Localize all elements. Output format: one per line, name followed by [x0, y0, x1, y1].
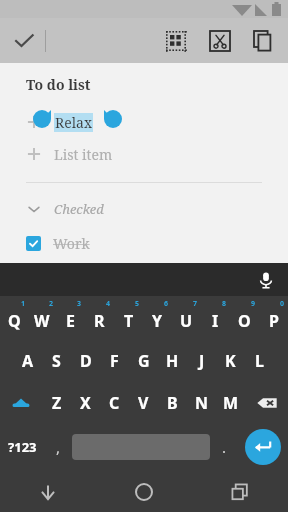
button[interactable]: 4: [85, 296, 114, 340]
staticText: 4: [106, 299, 111, 309]
button[interactable]: ,: [44, 424, 72, 470]
button[interactable]: Done: [6, 23, 42, 59]
staticText: I: [212, 310, 219, 332]
button[interactable]: List item: [0, 138, 288, 170]
staticText: 7: [193, 299, 198, 309]
staticText: Work: [53, 234, 90, 253]
staticText: To do list: [26, 75, 91, 94]
staticText: .: [222, 437, 227, 457]
staticText: M: [223, 392, 239, 414]
staticText: P: [269, 310, 279, 332]
button[interactable]: L: [245, 340, 274, 382]
button[interactable]: H: [158, 340, 187, 382]
staticText: L: [255, 350, 264, 372]
button[interactable]: X: [71, 382, 100, 424]
button[interactable]: N: [187, 382, 216, 424]
button[interactable]: 1: [0, 296, 28, 340]
button[interactable]: V: [129, 382, 158, 424]
button[interactable]: K: [216, 340, 245, 382]
button[interactable]: Voice input: [252, 266, 280, 294]
staticText: 5: [135, 299, 140, 309]
button[interactable]: 7: [172, 296, 201, 340]
staticText: 1: [21, 299, 26, 309]
staticText: G: [138, 350, 150, 372]
staticText: 9: [251, 299, 256, 309]
button[interactable]: Cut: [204, 25, 236, 57]
staticText: R: [94, 310, 105, 332]
staticText: C: [109, 392, 120, 414]
button[interactable]: S: [42, 340, 71, 382]
button[interactable]: Shift: [0, 382, 42, 424]
staticText: J: [199, 350, 205, 372]
staticText: List item: [54, 145, 113, 164]
button[interactable]: ?123: [0, 424, 44, 470]
button[interactable]: B: [158, 382, 187, 424]
staticText: K: [225, 350, 236, 372]
button[interactable]: 8: [201, 296, 230, 340]
staticText: 2: [49, 299, 54, 309]
button[interactable]: 5: [114, 296, 143, 340]
staticText: 3: [77, 299, 82, 309]
button[interactable]: Recent apps: [192, 472, 288, 512]
staticText: 6: [164, 299, 169, 309]
button[interactable]: Copy: [248, 25, 280, 57]
button[interactable]: Hide keyboard: [0, 472, 96, 512]
staticText: H: [166, 350, 179, 372]
button[interactable]: .: [210, 424, 238, 470]
button[interactable]: C: [100, 382, 129, 424]
staticText: U: [180, 310, 193, 332]
staticText: 8: [222, 299, 227, 309]
button[interactable]: Checked: [0, 195, 288, 223]
staticText: W: [34, 310, 50, 332]
staticText: ,: [56, 437, 61, 457]
button[interactable]: Home: [96, 472, 192, 512]
staticText: 0: [280, 299, 285, 309]
staticText: V: [138, 392, 149, 414]
staticText: Z: [52, 392, 62, 414]
button[interactable]: Z: [42, 382, 71, 424]
button[interactable]: 2: [28, 296, 56, 340]
button[interactable]: 6: [143, 296, 172, 340]
button[interactable]: 0: [259, 296, 288, 340]
button[interactable]: Select all: [160, 25, 192, 57]
button[interactable]: D: [71, 340, 100, 382]
staticText: N: [195, 392, 209, 414]
button[interactable]: M: [216, 382, 245, 424]
button[interactable]: F: [100, 340, 129, 382]
staticText: Checked: [54, 200, 104, 218]
staticText: B: [167, 392, 178, 414]
staticText: S: [52, 350, 61, 372]
button[interactable]: Enter: [238, 424, 288, 470]
staticText: F: [110, 350, 119, 372]
staticText: O: [238, 310, 251, 332]
staticText: E: [66, 310, 75, 332]
button[interactable]: G: [129, 340, 158, 382]
button[interactable]: Work: [0, 229, 288, 257]
staticText: D: [80, 350, 92, 372]
staticText: Relax: [55, 113, 92, 132]
staticText: ?123: [8, 438, 37, 456]
button[interactable]: Relax: [0, 106, 288, 138]
button[interactable]: 3: [56, 296, 85, 340]
button[interactable]: Backspace: [245, 382, 288, 424]
button[interactable]: 9: [230, 296, 259, 340]
staticText: Q: [8, 310, 21, 332]
button[interactable]: A: [13, 340, 42, 382]
staticText: T: [124, 310, 134, 332]
staticText: X: [80, 392, 91, 414]
staticText: A: [22, 350, 34, 372]
staticText: Y: [152, 310, 163, 332]
button[interactable]: J: [187, 340, 216, 382]
